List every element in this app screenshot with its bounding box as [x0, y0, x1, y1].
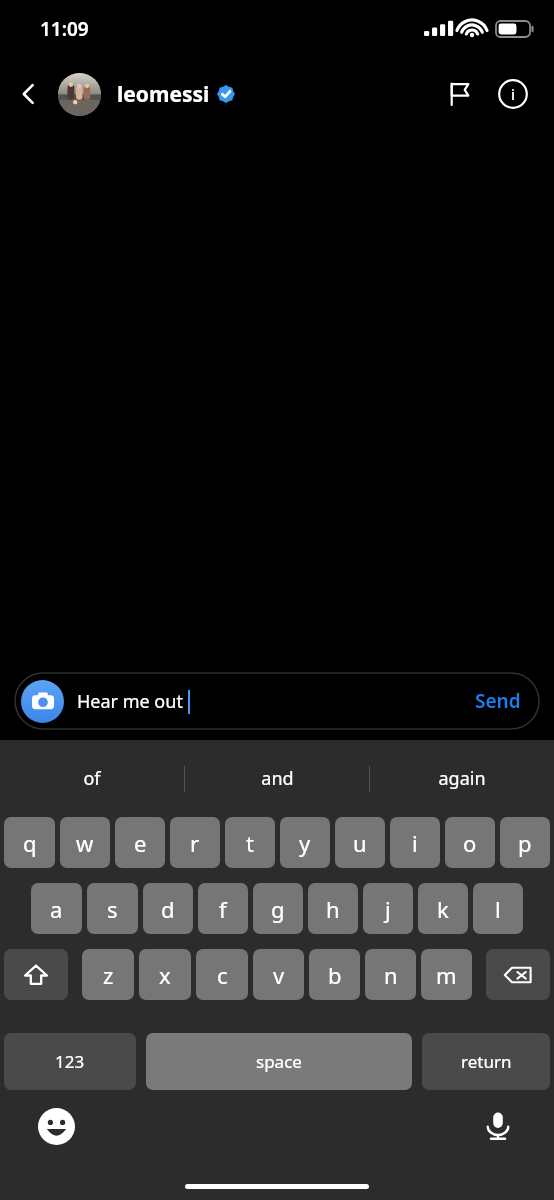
button[interactable]: return: [422, 1033, 550, 1090]
button[interactable]: i: [390, 817, 440, 868]
button[interactable]: l: [473, 883, 523, 934]
button[interactable]: leomessi: [58, 58, 432, 130]
staticText: e: [134, 828, 147, 858]
button[interactable]: p: [500, 817, 550, 868]
staticText: i: [511, 84, 516, 104]
button[interactable]: m: [421, 949, 472, 1000]
staticText: 11:09: [40, 16, 89, 42]
button[interactable]: 123: [4, 1033, 136, 1090]
button[interactable]: c: [196, 949, 248, 1000]
staticText: of: [83, 766, 101, 791]
button[interactable]: v: [253, 949, 304, 1000]
button[interactable]: d: [143, 883, 193, 934]
staticText: q: [23, 828, 37, 858]
staticText: z: [103, 960, 114, 990]
staticText: j: [385, 894, 391, 924]
button[interactable]: t: [225, 817, 275, 868]
button[interactable]: Backspace: [486, 949, 550, 1000]
staticText: i: [412, 828, 418, 858]
staticText: b: [328, 960, 342, 990]
staticText: Hear me out: [77, 689, 183, 714]
button[interactable]: j: [363, 883, 413, 934]
staticText: Send: [475, 688, 521, 714]
staticText: n: [384, 960, 398, 990]
staticText: g: [271, 894, 285, 924]
button[interactable]: Voice input: [474, 1102, 522, 1150]
button[interactable]: Report: [432, 58, 486, 130]
staticText: again: [438, 766, 486, 791]
button[interactable]: of: [0, 740, 184, 817]
button[interactable]: g: [253, 883, 303, 934]
staticText: return: [461, 1050, 512, 1073]
staticText: c: [217, 960, 228, 990]
button[interactable]: f: [198, 883, 248, 934]
staticText: u: [353, 828, 367, 858]
button[interactable]: a: [31, 883, 82, 934]
button[interactable]: again: [370, 740, 554, 817]
button[interactable]: z: [82, 949, 134, 1000]
staticText: k: [437, 894, 449, 924]
staticText: p: [518, 828, 532, 858]
button[interactable]: r: [170, 817, 220, 868]
staticText: t: [246, 828, 254, 858]
staticText: y: [299, 828, 311, 858]
staticText: f: [219, 894, 227, 924]
staticText: a: [50, 894, 63, 924]
button[interactable]: Camera: [15, 673, 539, 729]
staticText: r: [190, 828, 200, 858]
staticText: v: [273, 960, 285, 990]
staticText: l: [495, 894, 501, 924]
button[interactable]: Back: [0, 58, 58, 130]
button[interactable]: Info: [486, 58, 540, 130]
staticText: x: [159, 960, 171, 990]
staticText: d: [161, 894, 175, 924]
button[interactable]: o: [445, 817, 495, 868]
staticText: space: [256, 1050, 302, 1073]
button[interactable]: w: [60, 817, 110, 868]
staticText: s: [107, 894, 118, 924]
button[interactable]: Camera: [21, 680, 64, 723]
button[interactable]: n: [365, 949, 416, 1000]
button[interactable]: and: [185, 740, 369, 817]
staticText: w: [76, 828, 94, 858]
button[interactable]: Shift: [4, 949, 68, 1000]
button[interactable]: q: [4, 817, 55, 868]
staticText: o: [463, 828, 477, 858]
button[interactable]: h: [308, 883, 358, 934]
button[interactable]: Emoji: [32, 1102, 80, 1150]
button[interactable]: y: [280, 817, 330, 868]
staticText: and: [261, 766, 294, 791]
button[interactable]: k: [418, 883, 468, 934]
button[interactable]: Send: [475, 673, 521, 729]
button[interactable]: u: [335, 817, 385, 868]
button[interactable]: space: [146, 1033, 412, 1090]
staticText: 123: [55, 1050, 85, 1073]
staticText: leomessi: [117, 80, 210, 109]
button[interactable]: b: [309, 949, 360, 1000]
staticText: m: [436, 960, 457, 990]
button[interactable]: s: [87, 883, 138, 934]
button[interactable]: e: [115, 817, 165, 868]
button[interactable]: x: [139, 949, 191, 1000]
staticText: h: [326, 894, 340, 924]
